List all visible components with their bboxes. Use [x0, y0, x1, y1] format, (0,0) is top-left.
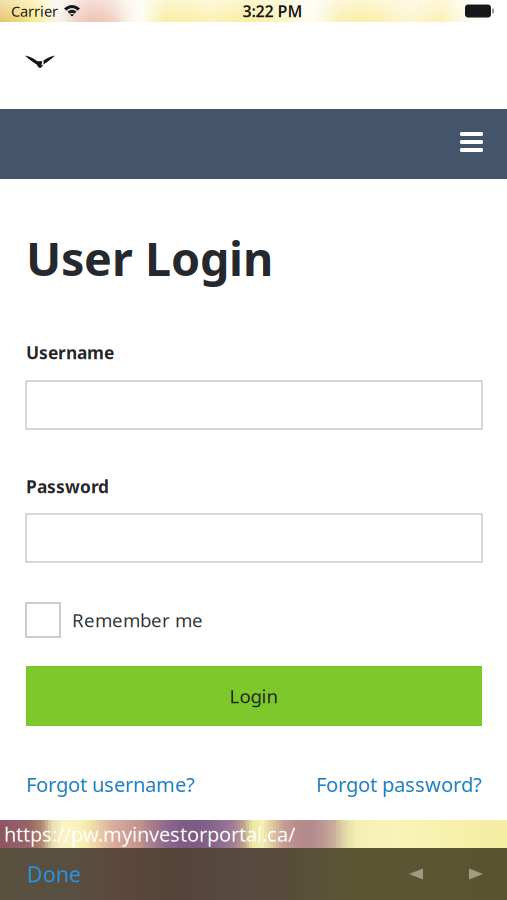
staticText: Forgot username? — [26, 771, 195, 798]
staticText: Login — [229, 684, 278, 708]
button[interactable]: Forgot username? — [26, 771, 195, 798]
button[interactable]: Done — [27, 860, 81, 888]
staticText: 3:22 PM — [242, 0, 302, 22]
button[interactable]: Back — [409, 868, 423, 879]
staticText: Forgot password? — [316, 771, 482, 798]
staticText: Carrier — [11, 1, 58, 21]
button[interactable]: Forward — [469, 868, 483, 879]
button[interactable]: Menu — [447, 119, 496, 169]
staticText: Username — [26, 341, 114, 364]
staticText: Done — [27, 860, 81, 888]
button[interactable]: Remember me — [26, 603, 482, 637]
staticText: https://pw.myinvestorportal.ca/ — [4, 821, 295, 847]
staticText: Remember me — [72, 608, 203, 632]
button[interactable]: Forgot password? — [316, 771, 482, 798]
staticText: Password — [26, 475, 109, 498]
button[interactable]: Login — [26, 666, 482, 726]
staticText: User Login — [26, 227, 273, 289]
